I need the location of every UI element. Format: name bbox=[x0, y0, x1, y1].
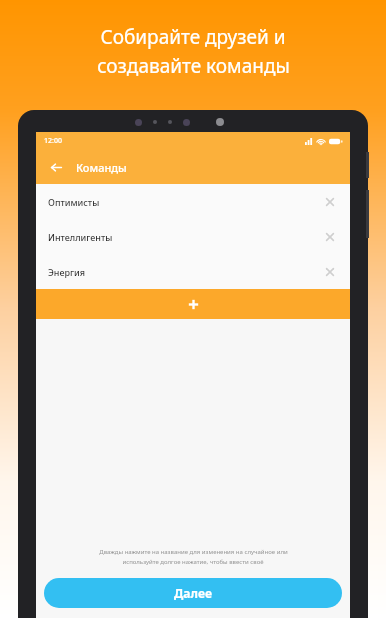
button[interactable]: Далее bbox=[44, 578, 342, 608]
button[interactable]: Оптимисты bbox=[36, 184, 350, 219]
staticText: создавайте команды bbox=[97, 53, 290, 79]
staticText: Энергия bbox=[48, 266, 320, 278]
staticText: Оптимисты bbox=[48, 196, 320, 208]
staticText: 12:00 bbox=[44, 136, 62, 146]
button[interactable]: Remove Интеллигенты bbox=[320, 227, 340, 247]
button[interactable]: Add team bbox=[36, 289, 350, 319]
button[interactable]: Энергия bbox=[36, 254, 350, 289]
button[interactable]: Интеллигенты bbox=[36, 219, 350, 254]
staticText: Далее bbox=[174, 585, 212, 601]
staticText: Команды bbox=[76, 160, 127, 175]
button[interactable]: Remove Оптимисты bbox=[320, 192, 340, 212]
button[interactable]: Remove Энергия bbox=[320, 262, 340, 282]
staticText: Собирайте друзей и bbox=[100, 24, 286, 50]
button[interactable]: Back bbox=[46, 157, 66, 177]
staticText: Интеллигенты bbox=[48, 231, 320, 243]
staticText: используйте долгое нажатие, чтобы ввести… bbox=[122, 558, 264, 566]
staticText: Дважды нажмите на название для изменения… bbox=[99, 548, 288, 556]
